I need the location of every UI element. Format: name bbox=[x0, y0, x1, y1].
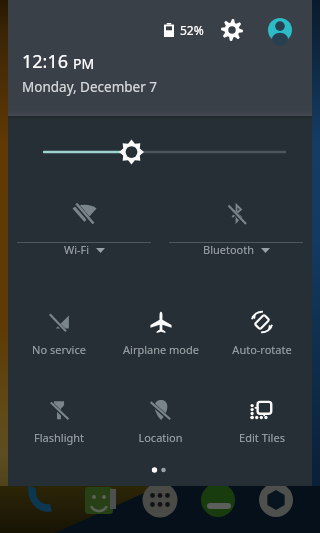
staticText: Auto-rotate bbox=[232, 342, 292, 357]
button[interactable]: Auto-rotate bbox=[211, 301, 312, 357]
staticText: Edit Tiles bbox=[239, 430, 285, 445]
staticText: 12:16 bbox=[22, 49, 69, 74]
button[interactable]: Settings bbox=[215, 13, 248, 46]
button[interactable]: Brightness bbox=[8, 126, 312, 178]
button[interactable]: Edit Tiles bbox=[211, 389, 312, 445]
button[interactable]: Flashlight bbox=[8, 389, 110, 445]
staticText: 52% bbox=[180, 22, 204, 38]
staticText: PM bbox=[73, 54, 95, 73]
staticText: Monday, December 7 bbox=[22, 78, 158, 96]
button[interactable]: 12:16 bbox=[14, 49, 166, 96]
button[interactable]: Bluetooth bbox=[160, 194, 312, 257]
staticText: Wi-Fi bbox=[64, 242, 90, 257]
button[interactable]: No service bbox=[8, 301, 110, 357]
staticText: No service bbox=[32, 342, 86, 357]
button[interactable]: Battery 52 percent bbox=[156, 16, 212, 44]
button[interactable]: Airplane mode bbox=[110, 301, 211, 357]
staticText: Location bbox=[138, 430, 183, 445]
staticText: Flashlight bbox=[34, 430, 84, 445]
button[interactable]: Location bbox=[110, 389, 211, 445]
staticText: Airplane mode bbox=[123, 342, 199, 357]
button[interactable]: User profile bbox=[263, 13, 296, 46]
staticText: Bluetooth bbox=[203, 242, 255, 257]
button[interactable]: Wi-Fi bbox=[8, 194, 160, 257]
